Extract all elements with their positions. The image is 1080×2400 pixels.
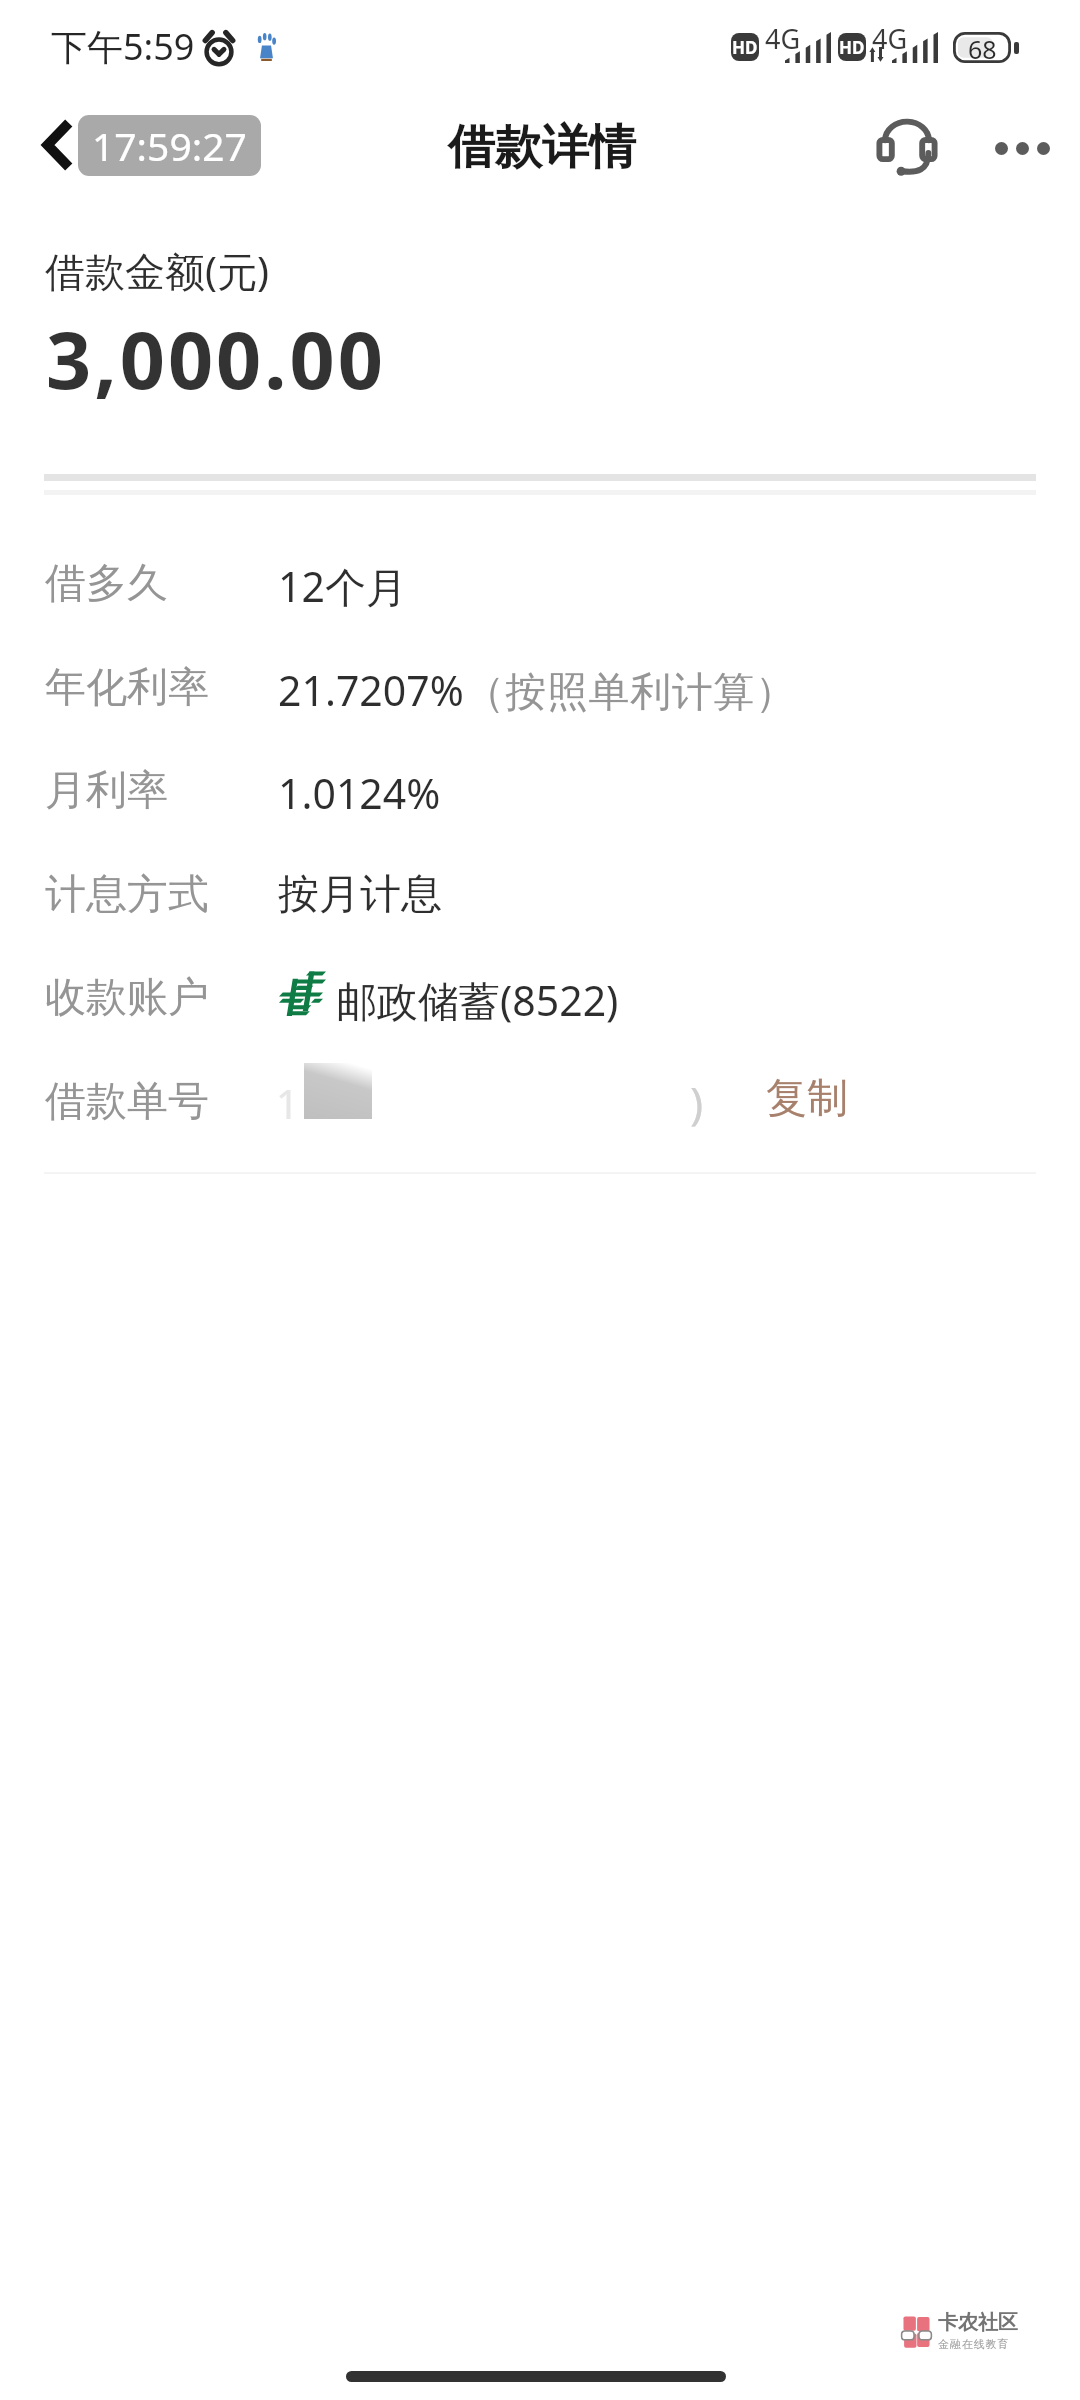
button[interactable]: 复制 — [752, 1061, 862, 1137]
staticText: 3,000.00 — [46, 305, 386, 413]
button[interactable]: Back — [37, 112, 269, 178]
staticText: 收款账户 — [45, 972, 209, 1024]
staticText: 1.0124% — [278, 765, 441, 821]
staticText: 17:59:27 — [92, 119, 247, 172]
staticText: 月利率 — [45, 765, 168, 817]
staticText: 借款金额(元) — [45, 243, 269, 298]
staticText: 1 — [276, 1076, 299, 1130]
staticText: 21.7207%（按照单利计算） — [278, 662, 797, 718]
staticText: 借款单号 — [45, 1076, 209, 1128]
staticText: 年化利率 — [45, 662, 209, 714]
staticText: 4G — [765, 20, 801, 57]
button[interactable]: Customer service — [862, 103, 952, 193]
button[interactable]: More options — [972, 103, 1072, 193]
staticText: 卡农社区 — [938, 2310, 1018, 2335]
staticText: 下午5:59 — [51, 22, 195, 71]
staticText: 4G — [872, 20, 908, 57]
staticText: 金融在线教育 — [938, 2337, 1010, 2351]
staticText: 复制 — [766, 1073, 848, 1125]
staticText: HD — [839, 36, 865, 59]
staticText: 借款详情 — [448, 118, 636, 177]
staticText: 12个月 — [278, 558, 407, 614]
staticText: 借多久 — [45, 558, 168, 610]
staticText: 邮政储蓄(8522) — [336, 972, 619, 1028]
staticText: 68 — [968, 32, 997, 63]
staticText: HD — [732, 36, 758, 59]
staticText: 按月计息 — [278, 869, 442, 921]
staticText: ) — [690, 1072, 704, 1132]
staticText: 计息方式 — [45, 869, 209, 921]
